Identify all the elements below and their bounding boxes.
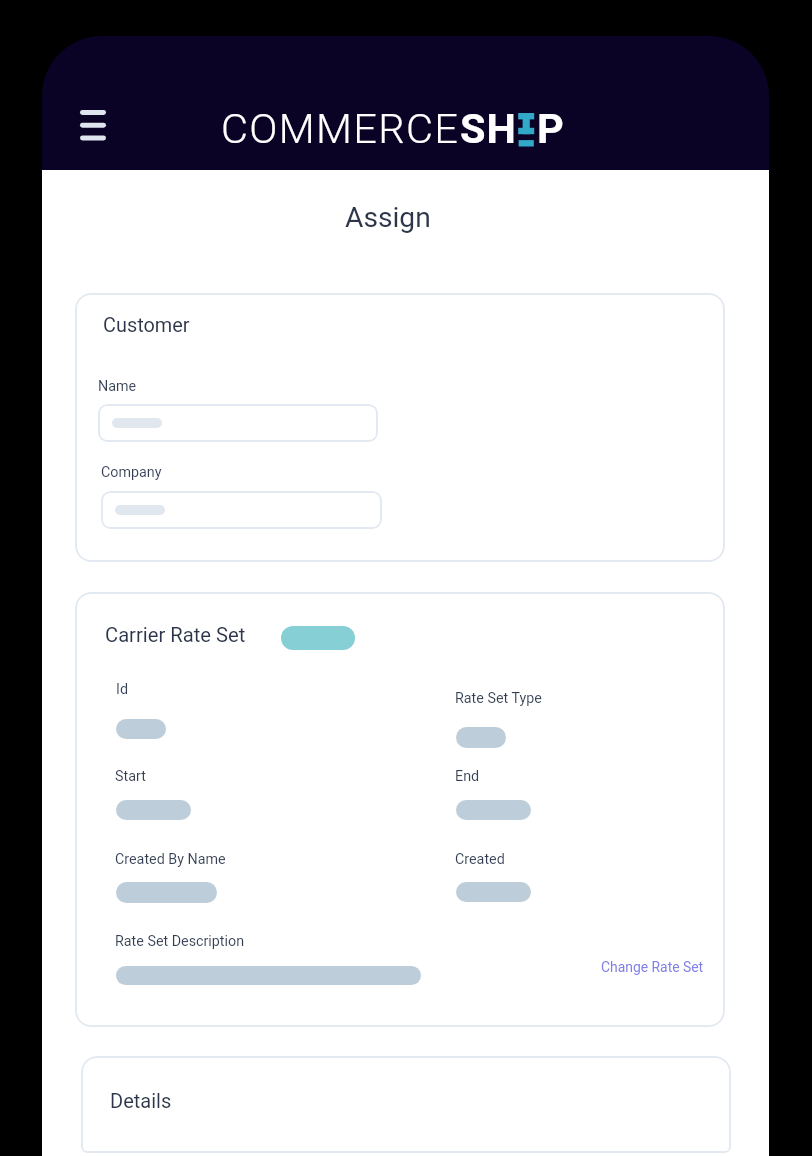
staticText: End <box>455 768 480 785</box>
staticText: Carrier Rate Set <box>105 623 246 647</box>
staticText: P <box>537 104 564 153</box>
staticText: Assign <box>345 201 431 234</box>
staticText: Name <box>98 378 137 395</box>
staticText: COMMERCE <box>221 104 460 153</box>
button[interactable] <box>98 404 378 442</box>
staticText: Created <box>455 851 505 868</box>
staticText: Start <box>115 768 146 785</box>
staticText: Customer <box>103 314 190 337</box>
staticText: SH <box>460 104 517 153</box>
other: CommerceShip <box>221 104 564 153</box>
staticText: Details <box>110 1089 172 1112</box>
staticText: Change Rate Set <box>601 959 704 975</box>
staticText: Rate Set Type <box>455 690 542 707</box>
button[interactable]: Open navigation menu <box>67 97 119 153</box>
button[interactable] <box>101 491 382 529</box>
staticText: Company <box>101 464 162 481</box>
staticText: Rate Set Description <box>115 933 245 950</box>
button[interactable]: Change Rate Set <box>593 953 712 981</box>
staticText: Id <box>116 681 128 698</box>
staticText: Created By Name <box>115 851 226 868</box>
